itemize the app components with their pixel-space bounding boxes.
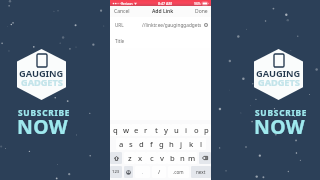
staticText: e [134,125,139,135]
staticText: .com [173,169,184,175]
staticText: c [150,153,154,163]
staticText: b [170,153,175,163]
button[interactable]: / [152,166,166,178]
button[interactable]: r [141,124,151,136]
button[interactable]: y [161,124,171,136]
button[interactable]: 123 [110,166,122,178]
staticText: j [180,139,183,149]
button[interactable]: b [167,152,177,164]
staticText: h [169,139,174,149]
button[interactable]: w [121,124,131,136]
staticText: SUBSCRIBE [18,107,71,118]
button[interactable]: n [177,152,187,164]
staticText: x [138,153,143,163]
button[interactable]: Shift [110,152,122,164]
button[interactable]: c [146,152,157,164]
staticText: t [155,125,158,135]
staticText: k [189,139,194,149]
staticText: GADGETS [21,76,63,89]
staticText: q [113,125,118,135]
button[interactable]: Cancel [113,6,131,17]
staticText: g [159,139,164,149]
button[interactable]: i [181,124,191,136]
staticText: Title [115,38,125,44]
button[interactable]: s [126,138,136,150]
staticText: s [129,139,133,149]
staticText: l [200,139,203,149]
button[interactable]: e [131,124,141,136]
staticText: GAUGING [256,67,301,80]
staticText: Verizon [121,1,133,5]
button[interactable]: o [191,124,201,136]
staticText: GAUGING [19,67,64,80]
button[interactable]: v [157,152,167,164]
button[interactable]: m [187,152,197,164]
button[interactable]: Backspace [199,152,211,164]
button[interactable]: a [116,138,126,150]
button[interactable]: l [196,138,206,150]
button[interactable]: x [135,152,146,164]
button[interactable]: Done [194,6,209,17]
staticText: m [188,153,196,163]
staticText: w [123,125,130,135]
staticText: GADGETS [258,76,300,89]
staticText: v [160,153,165,163]
staticText: d [139,139,144,149]
staticText: n [180,153,185,163]
staticText: URL [115,22,124,28]
staticText: i [185,125,188,135]
staticText: f [150,139,153,149]
button[interactable]: t [151,124,161,136]
button[interactable]: d [136,138,146,150]
staticText: NOW [17,113,68,140]
staticText: //linktr.ee/gauginggadgets [142,22,202,28]
staticText: / [158,168,161,176]
staticText: SUBSCRIBE [255,107,308,118]
staticText: Add Link [152,8,174,15]
button[interactable]: k [186,138,196,150]
button[interactable]: p [201,124,211,136]
button[interactable]: Emoji [124,166,133,178]
button[interactable]: u [171,124,181,136]
staticText: z [128,153,132,163]
staticText: NOW [254,113,305,140]
button[interactable]: .com [168,166,189,178]
staticText: 8:47 AM [158,1,172,6]
staticText: r [144,125,148,135]
button[interactable]: f [146,138,156,150]
staticText: y [164,125,169,135]
button[interactable]: Title [110,33,211,48]
staticText: u [174,125,179,135]
staticText: Done [195,8,208,15]
staticText: 96% [194,1,201,5]
staticText: p [204,125,209,135]
other: Clear [204,23,208,27]
staticText: a [119,139,124,149]
button[interactable]: z [124,152,135,164]
staticText: next [196,169,206,175]
button[interactable]: h [166,138,176,150]
button[interactable]: g [156,138,166,150]
staticText: 123 [112,169,120,175]
staticText: Cancel [114,8,130,15]
button[interactable]: j [176,138,186,150]
button[interactable]: URL [110,17,211,33]
staticText: . [142,169,144,176]
button[interactable]: q [110,124,121,136]
button[interactable]: next [191,166,211,178]
staticText: o [194,125,199,135]
